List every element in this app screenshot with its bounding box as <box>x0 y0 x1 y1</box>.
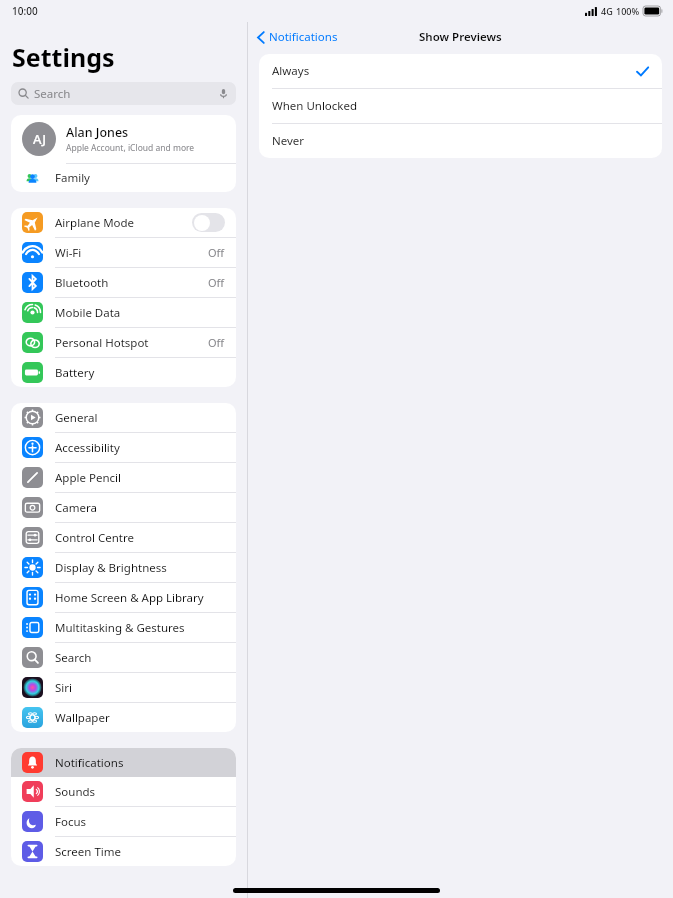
button[interactable]: Apple Pencil <box>11 463 236 492</box>
button[interactable]: Multitasking & Gestures <box>11 613 236 642</box>
staticText: 100% <box>616 5 640 17</box>
button[interactable]: Focus <box>11 807 236 836</box>
staticText: Never <box>272 133 305 149</box>
button[interactable]: Airplane Mode toggle <box>192 213 225 232</box>
staticText: Camera <box>55 500 97 516</box>
staticText: Battery <box>55 365 95 381</box>
staticText: Screen Time <box>55 844 122 860</box>
staticText: Siri <box>55 680 72 696</box>
button[interactable]: AJ <box>11 115 236 163</box>
staticText: When Unlocked <box>272 98 358 114</box>
staticText: 10:00 <box>12 4 38 18</box>
button[interactable]: Notifications <box>248 25 347 49</box>
staticText: General <box>55 410 98 426</box>
staticText: Accessibility <box>55 440 120 456</box>
staticText: Multitasking & Gestures <box>55 620 185 636</box>
staticText: AJ <box>33 130 46 148</box>
staticText: Off <box>208 335 225 350</box>
staticText: Search <box>55 650 92 666</box>
button[interactable]: Camera <box>11 493 236 522</box>
staticText: Notifications <box>269 29 338 45</box>
staticText: Family <box>55 170 90 186</box>
staticText: Airplane Mode <box>55 215 135 231</box>
button[interactable]: Never <box>259 124 662 158</box>
button[interactable]: When Unlocked <box>259 89 662 123</box>
staticText: Off <box>208 275 225 290</box>
button[interactable]: Siri <box>11 673 236 702</box>
staticText: Show Previews <box>419 29 502 45</box>
staticText: Off <box>208 245 225 260</box>
staticText: Alan Jones <box>66 124 129 141</box>
staticText: Wallpaper <box>55 710 110 726</box>
button[interactable]: Search <box>11 643 236 672</box>
staticText: Search <box>34 86 71 102</box>
staticText: Wi-Fi <box>55 245 82 261</box>
button[interactable]: Family <box>11 164 236 192</box>
button[interactable]: Wi-Fi <box>11 238 236 267</box>
button[interactable]: Accessibility <box>11 433 236 462</box>
button[interactable]: Home Screen & App Library <box>11 583 236 612</box>
button[interactable]: Sounds <box>11 777 236 806</box>
button[interactable]: Bluetooth <box>11 268 236 297</box>
button[interactable]: Search <box>11 82 236 105</box>
staticText: Settings <box>12 40 115 74</box>
button[interactable]: Battery <box>11 358 236 387</box>
staticText: Sounds <box>55 784 96 800</box>
staticText: Always <box>272 63 310 79</box>
staticText: Apple Pencil <box>55 470 121 486</box>
button[interactable]: Screen Time <box>11 837 236 866</box>
button[interactable]: Notifications <box>11 748 236 777</box>
staticText: Control Centre <box>55 530 134 546</box>
button[interactable]: Airplane Mode <box>11 208 236 237</box>
button[interactable]: Display & Brightness <box>11 553 236 582</box>
button[interactable]: Always <box>259 54 662 88</box>
staticText: 4G <box>601 5 613 17</box>
staticText: Personal Hotspot <box>55 335 149 351</box>
staticText: Display & Brightness <box>55 560 167 576</box>
staticText: Bluetooth <box>55 275 109 291</box>
staticText: Focus <box>55 814 87 830</box>
button[interactable]: General <box>11 403 236 432</box>
button[interactable]: Wallpaper <box>11 703 236 732</box>
button[interactable]: Control Centre <box>11 523 236 552</box>
staticText: Home Screen & App Library <box>55 590 204 606</box>
staticText: Mobile Data <box>55 305 121 321</box>
button[interactable]: Mobile Data <box>11 298 236 327</box>
staticText: Notifications <box>55 755 124 771</box>
staticText: Apple Account, iCloud and more <box>66 142 195 154</box>
button[interactable]: Personal Hotspot <box>11 328 236 357</box>
